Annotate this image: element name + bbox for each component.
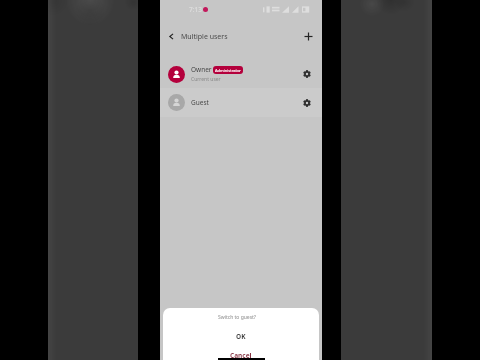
staticText: Guest [191,98,209,107]
staticText: OK [236,332,246,341]
staticText: Administrator [215,68,241,73]
button[interactable]: Back [165,30,177,42]
button[interactable]: Owner [160,60,322,88]
staticText: 7:13 [189,5,202,14]
button[interactable]: Settings [301,68,313,80]
button[interactable]: Guest [160,88,322,117]
button[interactable]: Add user [302,30,314,42]
button[interactable]: Settings [301,97,313,109]
staticText: Switch to guest? [163,314,315,321]
button[interactable]: Cancel [210,350,272,360]
button[interactable]: OK [216,331,266,342]
staticText: Cancel [230,351,252,360]
staticText: Multiple users [181,32,228,42]
staticText: Owner [191,65,212,74]
staticText: Current user [191,76,221,83]
